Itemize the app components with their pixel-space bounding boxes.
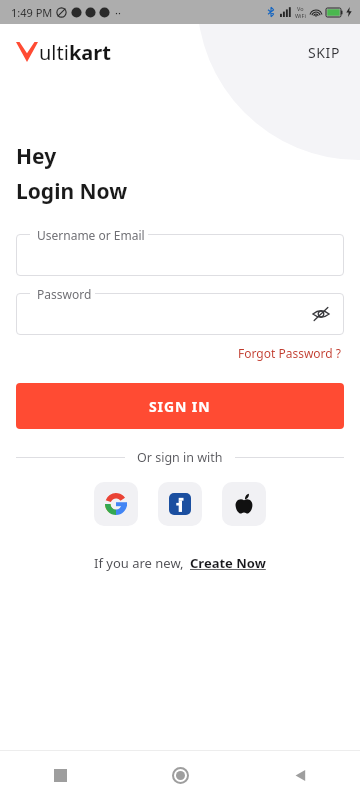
staticText: WiFi [295,12,306,19]
staticText: Vo [297,5,304,12]
staticText: ultikart [39,39,111,66]
button[interactable]: Sign in with Apple [222,482,266,526]
button[interactable]: Sign in with Facebook [158,482,202,526]
button[interactable]: Create Now [190,554,266,572]
button[interactable]: Home [120,751,240,800]
button[interactable]: SIGN IN [16,383,344,429]
button[interactable]: SKIP [304,39,344,66]
staticText: ·· [115,5,121,20]
button[interactable]: Sign in with Google [94,482,138,526]
button[interactable]: Forgot Password ? [236,343,344,363]
staticText: Forgot Password ? [238,345,342,361]
staticText: 1:49 PM [11,5,53,20]
button[interactable]: Recents [0,751,120,800]
staticText: Hey [16,142,57,171]
staticText: SKIP [308,43,340,62]
staticText: Username or Email [37,227,145,243]
button[interactable]: Show password [308,301,334,327]
staticText: Or sign in with [137,449,223,466]
staticText: Login Now [16,177,128,206]
staticText: If you are new, [94,554,184,572]
staticText: Password [37,286,92,302]
button[interactable]: Back [240,751,360,800]
staticText: SIGN IN [149,397,211,416]
staticText: Create Now [190,554,266,572]
